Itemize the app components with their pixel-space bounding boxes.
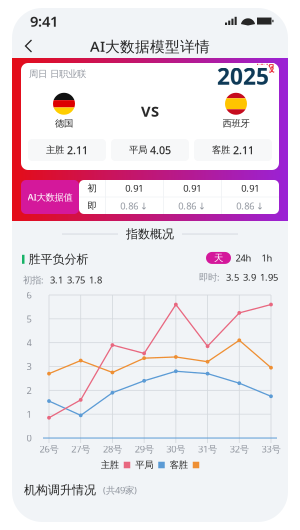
staticText: 0 xyxy=(26,432,31,444)
staticText: 31号 xyxy=(198,443,217,455)
staticText: 0.86 ↓ xyxy=(120,200,148,212)
staticText: 32号 xyxy=(230,443,249,455)
staticText: 2025 xyxy=(218,64,270,94)
staticText: 周日 日职业联 xyxy=(29,68,86,80)
staticText: 初 xyxy=(87,182,96,194)
staticText: 2025 xyxy=(218,58,270,88)
staticText: 2.11 xyxy=(67,143,88,157)
staticText: 1 xyxy=(26,408,31,420)
staticText: 2025 xyxy=(218,59,270,90)
staticText: (共49家) xyxy=(103,484,137,496)
staticText: 26号 xyxy=(39,443,58,455)
staticText: 2025 xyxy=(214,62,266,92)
staticText: 9:41 xyxy=(30,11,58,31)
button[interactable]: 24h xyxy=(231,252,256,264)
staticText: 平局 xyxy=(129,144,147,156)
staticText: 3 xyxy=(26,360,31,373)
staticText: 客胜 xyxy=(170,459,188,471)
staticText: 2025 xyxy=(216,62,268,93)
staticText: 德国 xyxy=(55,118,73,129)
staticText: 主胜 xyxy=(101,459,119,471)
staticText: 3.5 3.9 1.95 xyxy=(226,271,278,283)
staticText: 主胜 xyxy=(46,144,64,156)
staticText: 0.91 xyxy=(241,182,259,194)
staticText: 2025 xyxy=(215,61,267,91)
staticText: 30号 xyxy=(166,443,185,455)
staticText: 2025 xyxy=(216,59,268,90)
staticText: 2025 xyxy=(216,58,268,88)
staticText: 2.11 xyxy=(233,143,254,157)
staticText: 24h xyxy=(235,252,251,264)
staticText: 2025 xyxy=(217,61,269,91)
staticText: 即时: xyxy=(199,271,220,283)
staticText: 2025 xyxy=(218,60,270,90)
staticText: 0.86 ↓ xyxy=(178,200,206,212)
staticText: 情报 xyxy=(256,63,274,74)
staticText: 2025 xyxy=(214,60,266,90)
staticText: VS xyxy=(141,101,159,121)
staticText: 29号 xyxy=(135,443,154,455)
staticText: AI大数据模型详情 xyxy=(90,36,210,56)
staticText: 2025 xyxy=(216,64,268,94)
staticText: 2025 xyxy=(219,61,271,91)
staticText: 2025 xyxy=(219,63,271,93)
staticText: 即 xyxy=(87,200,96,212)
staticText: 33号 xyxy=(261,443,280,455)
staticText: 2025 xyxy=(217,59,269,89)
staticText: AI大数据值 xyxy=(27,191,72,203)
staticText: 2025 xyxy=(220,60,272,90)
staticText: 天 xyxy=(214,252,223,264)
staticText: 1h xyxy=(261,252,272,264)
staticText: 胜平负分析 xyxy=(28,252,88,267)
staticText: 2025 xyxy=(219,59,271,89)
staticText: 5 xyxy=(26,313,31,325)
staticText: 2025 xyxy=(217,58,269,88)
button[interactable]: 主胜 xyxy=(28,139,106,161)
button[interactable]: Back xyxy=(18,33,40,58)
button[interactable]: 平局 xyxy=(111,139,189,161)
staticText: 3.1 3.75 1.8 xyxy=(50,274,102,286)
button[interactable]: 天 xyxy=(206,252,231,264)
staticText: 指数概况 xyxy=(126,227,174,241)
staticText: 2025 xyxy=(220,61,272,91)
staticText: 2025 xyxy=(218,62,270,92)
staticText: 机构调升情况 xyxy=(24,483,96,497)
staticText: 2025 xyxy=(214,61,266,91)
staticText: 2025 xyxy=(218,62,270,93)
staticText: 2 xyxy=(26,384,31,396)
staticText: 2025 xyxy=(215,60,267,90)
staticText: 初指: xyxy=(23,274,44,286)
staticText: 2025 xyxy=(220,62,272,92)
staticText: 27号 xyxy=(71,443,90,455)
button[interactable]: 客胜 xyxy=(194,139,272,161)
staticText: 2025 xyxy=(215,62,267,92)
staticText: 2025 xyxy=(215,63,267,93)
staticText: 西班牙 xyxy=(222,118,249,129)
button[interactable]: 1h xyxy=(256,252,278,264)
staticText: 4.05 xyxy=(150,143,171,157)
staticText: 2025 xyxy=(217,64,269,94)
staticText: 0.91 xyxy=(125,182,143,194)
staticText: 6 xyxy=(26,289,31,301)
staticText: 4 xyxy=(26,336,31,349)
staticText: 0.91 xyxy=(183,182,201,194)
staticText: 客胜 xyxy=(212,144,230,156)
staticText: 28号 xyxy=(103,443,122,455)
staticText: 0.86 ↓ xyxy=(236,200,264,212)
staticText: 2025 xyxy=(215,59,267,89)
staticText: 平局 xyxy=(135,459,153,471)
staticText: 2025 xyxy=(217,63,269,93)
